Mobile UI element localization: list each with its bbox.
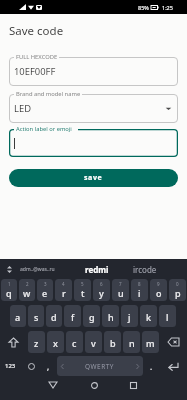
staticText: m (146, 337, 155, 349)
staticText: l (166, 311, 169, 323)
button[interactable]: Back (43, 375, 63, 395)
staticText: s (34, 311, 39, 323)
staticText: 0 (176, 281, 179, 287)
staticText: r (62, 287, 66, 299)
button[interactable]: x (47, 331, 64, 353)
staticText: v (91, 337, 96, 349)
staticText: z (34, 337, 39, 349)
staticText: q (6, 287, 12, 299)
staticText: 1 (8, 281, 11, 287)
button[interactable]: c (66, 331, 83, 353)
staticText: k (146, 311, 152, 323)
button[interactable]: , (42, 356, 55, 376)
button[interactable]: FULL HEXCODE (9, 57, 178, 86)
button[interactable]: a (10, 305, 26, 327)
button[interactable]: adm..@was..ru (20, 266, 55, 273)
button[interactable]: Recents (123, 375, 143, 395)
button[interactable]: redmi (85, 264, 109, 275)
staticText: a (15, 311, 21, 323)
staticText: 4 (62, 281, 65, 287)
button[interactable]: . (145, 356, 158, 376)
staticText: 5 (81, 281, 84, 287)
staticText: 10EF00FF (14, 65, 56, 78)
staticText: b (110, 337, 116, 349)
button[interactable]: 6 (93, 279, 110, 301)
staticText: d (51, 311, 57, 323)
button[interactable]: 5 (74, 279, 91, 301)
button[interactable]: save (9, 169, 178, 187)
staticText: FULL HEXCODE (16, 53, 58, 61)
button[interactable]: Home (84, 375, 104, 395)
button[interactable]: f (64, 305, 81, 327)
staticText: x (53, 337, 58, 349)
button[interactable]: Emoji (22, 356, 40, 376)
button[interactable]: k (140, 305, 157, 327)
staticText: i (138, 287, 141, 299)
other: Dropdown (165, 105, 172, 112)
button[interactable]: Brand and model name (9, 94, 178, 123)
staticText: LED (14, 102, 31, 115)
staticText: h (108, 311, 114, 323)
button[interactable]: h (102, 305, 119, 327)
button[interactable]: n (123, 331, 140, 353)
button[interactable]: l (159, 305, 176, 327)
staticText: j (128, 311, 131, 323)
staticText: ircode (133, 264, 157, 275)
button[interactable]: Expand suggestions (4, 264, 14, 274)
button[interactable]: 7 (112, 279, 129, 301)
button[interactable]: 123 (1, 356, 20, 376)
button[interactable]: 1 (1, 279, 17, 301)
staticText: 8 (138, 281, 141, 287)
staticText: , (47, 361, 50, 372)
staticText: u (118, 287, 124, 299)
staticText: Action label or emoji (16, 125, 72, 133)
staticText: 9 (157, 281, 160, 287)
staticText: g (89, 311, 95, 323)
button[interactable]: v (85, 331, 102, 353)
button[interactable]: j (121, 305, 138, 327)
button[interactable]: Action label or emoji (9, 129, 178, 157)
staticText: o (156, 287, 162, 299)
staticText: 1:25 (162, 4, 173, 11)
staticText: QWERTY (85, 362, 115, 371)
staticText: 85% (138, 4, 149, 11)
staticText: 3 (44, 281, 47, 287)
button[interactable]: d (46, 305, 62, 327)
button[interactable]: ircode (133, 264, 157, 275)
staticText: Save code (9, 23, 64, 39)
staticText: t (81, 287, 85, 299)
button[interactable]: b (104, 331, 121, 353)
button[interactable]: g (83, 305, 100, 327)
staticText: 2 (26, 281, 29, 287)
staticText: save (84, 173, 103, 183)
staticText: c (72, 337, 77, 349)
button[interactable]: s (28, 305, 44, 327)
button[interactable]: 3 (37, 279, 53, 301)
button[interactable]: 2 (19, 279, 35, 301)
staticText: redmi (85, 264, 109, 275)
staticText: 6 (100, 281, 103, 287)
staticText: adm..@was..ru (20, 266, 55, 273)
staticText: p (175, 287, 181, 299)
button[interactable]: 9 (150, 279, 167, 301)
button[interactable]: Enter (160, 356, 186, 376)
button[interactable]: m (142, 331, 159, 353)
button[interactable]: Backspace (161, 331, 186, 353)
staticText: 123 (5, 362, 16, 370)
staticText: f (71, 311, 75, 323)
button[interactable]: 4 (55, 279, 72, 301)
button[interactable]: z (28, 331, 45, 353)
staticText: . (150, 361, 153, 372)
staticText: w (23, 287, 31, 299)
button[interactable]: QWERTY (57, 356, 143, 376)
button[interactable]: Shift (1, 331, 26, 353)
staticText: 7 (119, 281, 122, 287)
staticText: n (129, 337, 135, 349)
staticText: y (99, 287, 104, 299)
staticText: Brand and model name (16, 90, 81, 98)
button[interactable]: 0 (169, 279, 186, 301)
staticText: e (42, 287, 48, 299)
button[interactable]: 8 (131, 279, 148, 301)
